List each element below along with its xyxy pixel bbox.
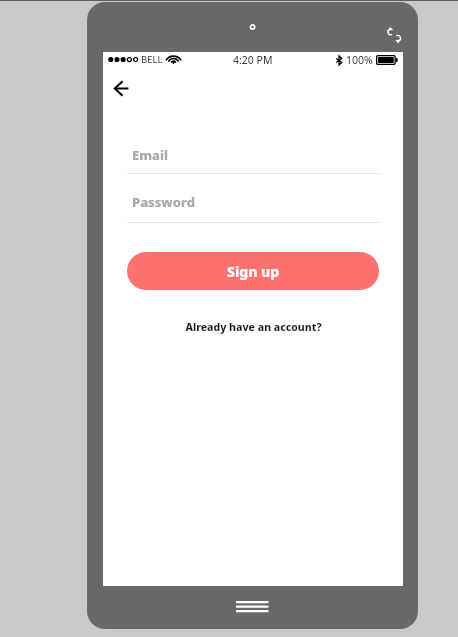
staticText: Sign up <box>227 262 280 281</box>
staticText: Email <box>132 146 169 164</box>
button[interactable]: Menu <box>235 598 270 615</box>
staticText: BELL <box>141 53 163 66</box>
staticText: Already have an account? <box>185 320 322 334</box>
staticText: Password <box>132 193 195 211</box>
button[interactable]: Sign up <box>127 252 379 290</box>
button[interactable]: Back <box>107 74 135 102</box>
staticText: 4:20 PM <box>233 53 273 67</box>
button[interactable]: Rotate screen <box>382 23 406 47</box>
staticText: 100% <box>346 53 373 67</box>
button[interactable]: Already have an account? <box>103 317 403 337</box>
